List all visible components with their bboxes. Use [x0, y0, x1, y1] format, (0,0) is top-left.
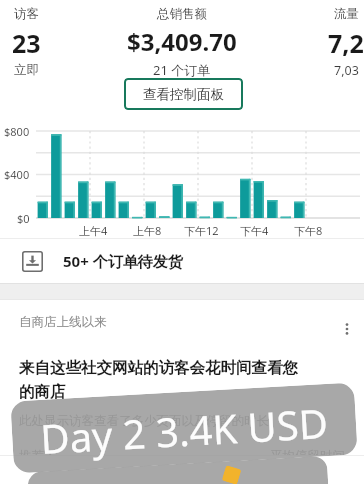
- staticText: 推荐人: [19, 448, 57, 455]
- button[interactable]: 待发货订单: [0, 239, 364, 283]
- staticText: 平均停留时间: [270, 448, 345, 455]
- staticText: 上午4: [79, 223, 108, 238]
- staticText: 查看控制面板: [143, 86, 224, 103]
- button[interactable]: 总销售额: [82, 6, 282, 79]
- staticText: 自商店上线以来: [19, 314, 107, 330]
- button[interactable]: 访客: [0, 6, 66, 78]
- staticText: 立即: [14, 62, 39, 78]
- staticText: 上午8: [133, 223, 162, 238]
- staticText: $0: [17, 211, 30, 226]
- staticText: $3,409.70: [127, 25, 237, 58]
- staticText: 下午12: [184, 223, 219, 238]
- staticText: 50+ 个订单待发货: [63, 251, 183, 271]
- staticText: $800: [4, 124, 30, 139]
- button[interactable]: 更多选项: [332, 314, 362, 344]
- staticText: 此处显示访客查看了多少页面以及停留的时长。: [19, 413, 282, 429]
- staticText: $400: [4, 167, 30, 182]
- staticText: 流量: [334, 6, 359, 22]
- staticText: 7,03: [334, 62, 359, 79]
- staticText: 7,2: [328, 26, 364, 60]
- staticText: 的商店: [19, 382, 66, 402]
- staticText: 总销售额: [157, 6, 207, 22]
- staticText: 21 个订单: [153, 61, 211, 79]
- staticText: 来自这些社交网站的访客会花时间查看您: [19, 358, 298, 378]
- other: 待发货订单: [22, 251, 43, 272]
- staticText: 下午4: [240, 223, 269, 238]
- staticText: Day 2 3.4K USD: [39, 395, 329, 465]
- button[interactable]: 查看控制面板: [124, 78, 243, 110]
- staticText: 23: [12, 26, 41, 60]
- staticText: 下午8: [294, 223, 323, 238]
- button[interactable]: 流量: [306, 6, 364, 79]
- staticText: 访客: [14, 6, 39, 22]
